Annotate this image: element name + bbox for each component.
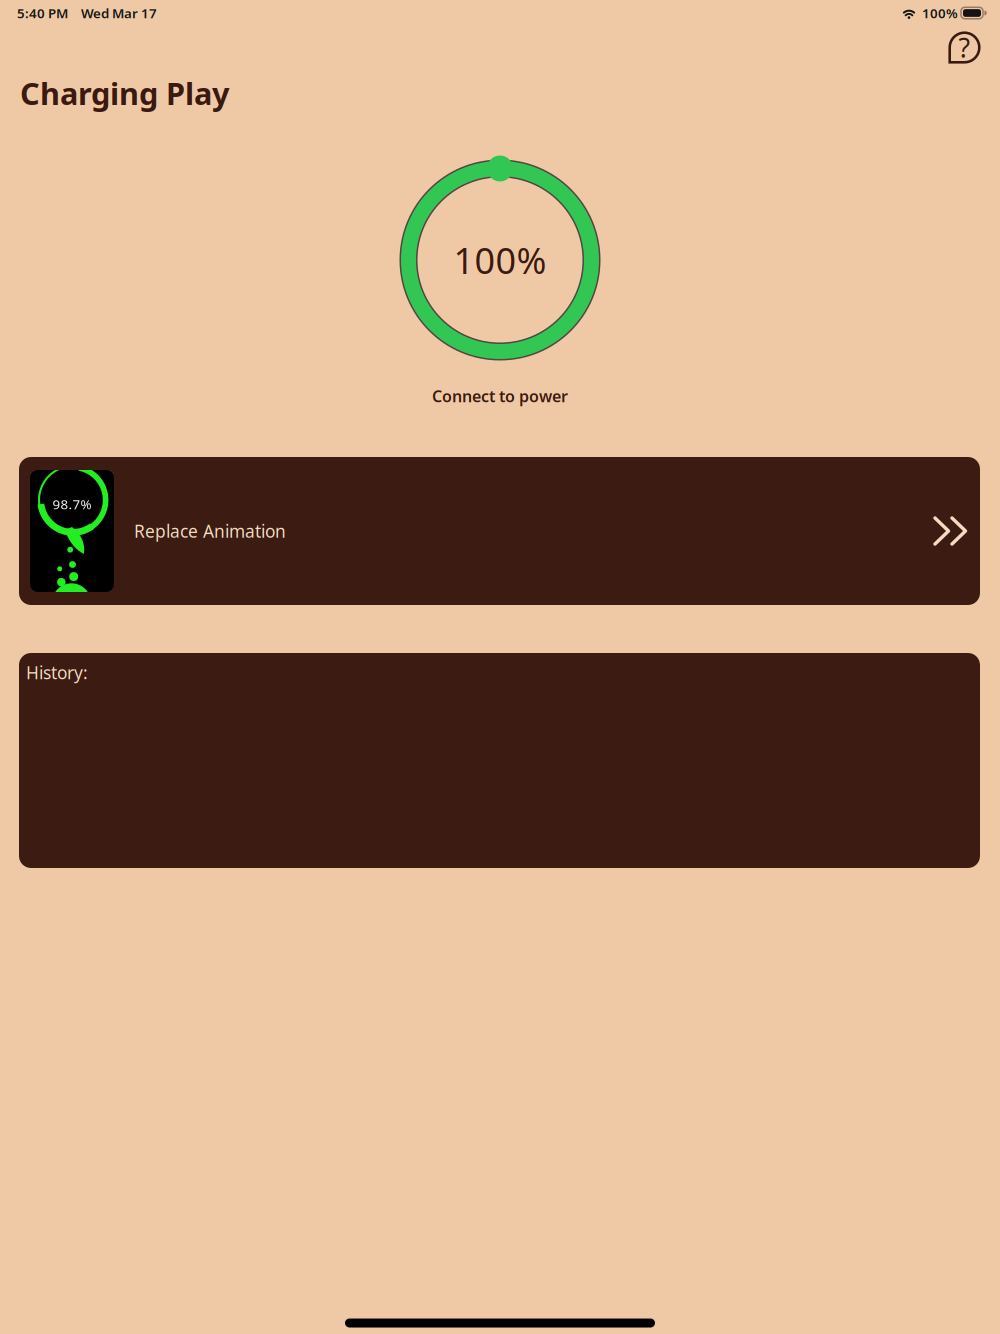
- staticText: 100%: [922, 4, 958, 22]
- staticText: Wed Mar 17: [81, 4, 157, 22]
- button[interactable]: Replace Animation: [19, 457, 980, 605]
- staticText: 5:40 PM: [17, 4, 68, 22]
- staticText: 100%: [453, 236, 546, 284]
- staticText: Charging Play: [20, 73, 230, 113]
- staticText: 98.7%: [52, 495, 91, 513]
- staticText: Connect to power: [432, 385, 568, 407]
- staticText: History:: [26, 661, 88, 684]
- staticText: Replace Animation: [134, 519, 286, 542]
- staticText: ?: [958, 30, 970, 65]
- button[interactable]: Help: [945, 28, 983, 66]
